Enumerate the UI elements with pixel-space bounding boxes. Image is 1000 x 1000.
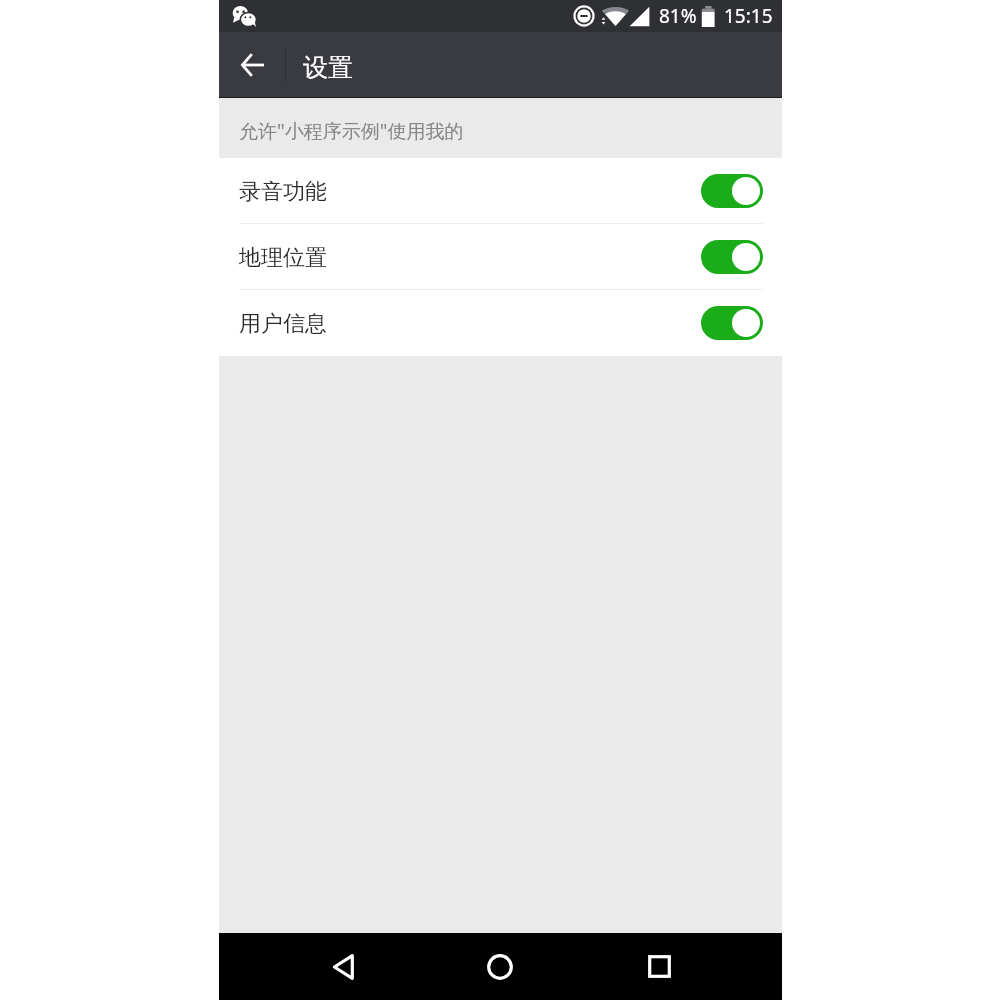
- staticText: 81%: [659, 3, 697, 29]
- button[interactable]: Back: [219, 32, 285, 98]
- button[interactable]: Back: [303, 933, 383, 1000]
- button[interactable]: 用户信息: [219, 290, 782, 356]
- staticText: 15:15: [724, 3, 773, 29]
- button[interactable]: 录音功能: [219, 158, 782, 224]
- staticText: 允许"小程序示例"使用我的: [239, 118, 464, 144]
- staticText: 用户信息: [239, 310, 327, 338]
- button[interactable]: Home: [460, 933, 540, 1000]
- button[interactable]: Toggle: [701, 306, 763, 340]
- button[interactable]: Toggle: [701, 240, 763, 274]
- button[interactable]: 地理位置: [219, 224, 782, 290]
- button[interactable]: Recents: [619, 933, 699, 1000]
- staticText: 设置: [303, 52, 353, 83]
- button[interactable]: Toggle: [701, 174, 763, 208]
- staticText: 录音功能: [239, 178, 327, 206]
- staticText: 地理位置: [239, 244, 327, 272]
